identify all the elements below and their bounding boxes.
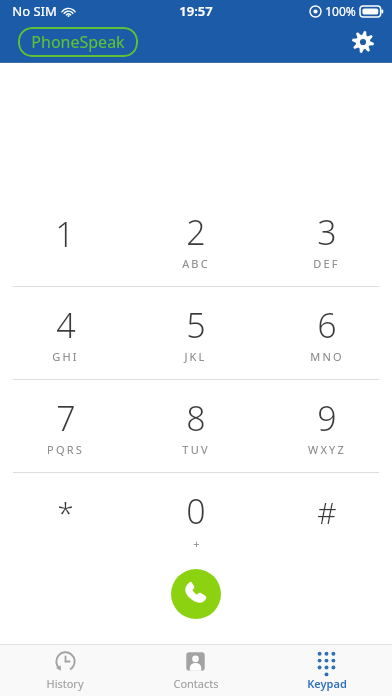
staticText: MNO [310,349,344,364]
button[interactable]: Call [171,569,221,619]
staticText: 4 [56,302,76,348]
staticText: 19:57 [179,2,213,20]
button[interactable]: Settings [346,25,380,59]
button[interactable]: PhoneSpeak [18,27,138,57]
button[interactable]: * [0,473,130,565]
staticText: 6 [317,302,337,348]
button[interactable]: 0 [130,473,261,565]
staticText: JKL [184,349,207,364]
button[interactable]: 6 [261,287,392,379]
staticText: GHI [52,349,79,364]
button[interactable]: Keypad [261,645,392,696]
staticText: PhoneSpeak [31,31,125,53]
button[interactable]: 5 [130,287,261,379]
staticText: 1 [55,211,75,257]
button[interactable]: 8 [130,380,261,472]
staticText: 8 [186,395,206,441]
button[interactable]: History [0,645,130,696]
button[interactable]: 3 [261,194,392,286]
staticText: Contacts [173,676,219,691]
staticText: + [193,536,200,551]
staticText: 7 [56,395,76,441]
staticText: No SIM [12,2,57,20]
staticText: WXYZ [308,442,346,457]
staticText: 0 [186,488,206,534]
staticText: * [57,492,74,533]
button[interactable]: # [261,473,392,565]
button[interactable]: Contacts [130,645,261,696]
button[interactable]: 9 [261,380,392,472]
staticText: 2 [186,209,206,255]
staticText: DEF [313,256,340,271]
button[interactable]: 2 [130,194,261,286]
staticText: 100% [325,3,356,19]
staticText: 5 [186,302,206,348]
staticText: History [46,676,84,691]
button[interactable]: 1 [0,194,130,286]
button[interactable]: 7 [0,380,130,472]
staticText: 9 [317,395,337,441]
staticText: 3 [317,209,337,255]
staticText: Keypad [307,676,347,691]
staticText: ABC [182,256,210,271]
staticText: PQRS [47,442,84,457]
staticText: # [317,492,337,533]
button[interactable]: 4 [0,287,130,379]
staticText: TUV [182,442,210,457]
